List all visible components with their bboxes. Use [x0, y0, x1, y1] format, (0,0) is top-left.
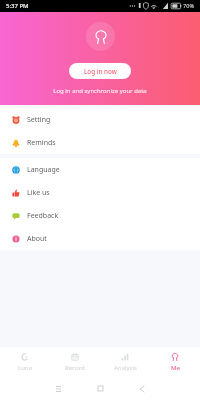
- button[interactable]: Reminds: [0, 131, 200, 154]
- staticText: Me: [171, 364, 180, 372]
- button[interactable]: Record: [50, 347, 100, 377]
- button[interactable]: Feedback: [0, 204, 200, 227]
- staticText: Luna: [18, 364, 32, 372]
- button[interactable]: Like us: [0, 181, 200, 204]
- staticText: Log in and synchronize your data: [53, 87, 147, 95]
- staticText: Like us: [27, 188, 50, 198]
- button[interactable]: Recents: [47, 377, 70, 400]
- button[interactable]: Analysis: [100, 347, 150, 377]
- button[interactable]: Luna: [0, 347, 50, 377]
- staticText: Setting: [27, 115, 51, 125]
- staticText: 5:37 PM: [6, 2, 29, 10]
- staticText: Analysis: [114, 364, 137, 372]
- button[interactable]: Language: [0, 158, 200, 181]
- button[interactable]: Setting: [0, 108, 200, 131]
- button[interactable]: Home: [89, 377, 112, 400]
- staticText: Reminds: [27, 138, 56, 148]
- staticText: 70%: [183, 2, 195, 10]
- staticText: Feedback: [27, 211, 59, 221]
- button[interactable]: Avatar: [86, 22, 115, 51]
- staticText: Language: [27, 165, 60, 175]
- staticText: About: [27, 234, 47, 244]
- button[interactable]: Me: [150, 347, 200, 377]
- button[interactable]: Log in now: [69, 63, 131, 79]
- button[interactable]: About: [0, 227, 200, 250]
- button[interactable]: Back: [130, 377, 153, 400]
- staticText: Log in now: [84, 67, 117, 76]
- staticText: Record: [65, 364, 85, 372]
